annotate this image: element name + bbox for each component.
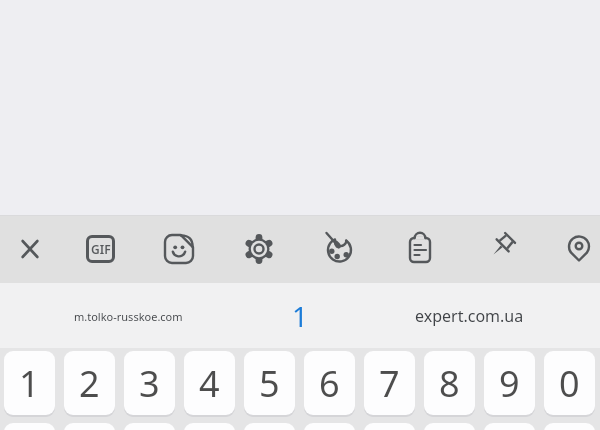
button[interactable]	[398, 227, 442, 271]
button[interactable]	[544, 423, 595, 430]
staticText: 1	[19, 359, 40, 408]
staticText: 3	[139, 359, 160, 408]
button[interactable]: 6	[304, 351, 355, 415]
button[interactable]	[364, 423, 415, 430]
button[interactable]: 0	[544, 351, 595, 415]
button[interactable]: expert.com.ua	[389, 292, 549, 340]
button[interactable]: 7	[364, 351, 415, 415]
button[interactable]	[244, 423, 295, 430]
button[interactable]	[304, 423, 355, 430]
button[interactable]	[64, 423, 115, 430]
button[interactable]: 1	[4, 351, 55, 415]
staticText: 6	[319, 359, 340, 408]
staticText: m.tolko-russkoe.com	[74, 309, 183, 324]
button[interactable]	[4, 423, 55, 430]
button[interactable]: GIF	[78, 227, 122, 271]
staticText: 1	[292, 297, 309, 335]
staticText: 2	[79, 359, 100, 408]
button[interactable]	[484, 423, 535, 430]
button[interactable]	[157, 227, 201, 271]
button[interactable]: 4	[184, 351, 235, 415]
button[interactable]	[480, 227, 524, 271]
button[interactable]	[124, 423, 175, 430]
button[interactable]: 8	[424, 351, 475, 415]
button[interactable]: 3	[124, 351, 175, 415]
button[interactable]	[8, 227, 52, 271]
button[interactable]	[424, 423, 475, 430]
button[interactable]: 9	[484, 351, 535, 415]
staticText: 4	[199, 359, 220, 408]
staticText: 5	[259, 359, 280, 408]
button[interactable]	[318, 227, 362, 271]
button[interactable]	[184, 423, 235, 430]
staticText: 7	[379, 359, 400, 408]
button[interactable]: 2	[64, 351, 115, 415]
staticText: 0	[559, 359, 580, 408]
staticText: 9	[499, 359, 520, 408]
staticText: expert.com.ua	[415, 305, 524, 327]
staticText: 8	[439, 359, 460, 408]
staticText: GIF	[91, 241, 111, 257]
button[interactable]	[237, 227, 281, 271]
button[interactable]	[557, 227, 600, 271]
button[interactable]: 5	[244, 351, 295, 415]
button[interactable]: 1	[260, 292, 340, 340]
button[interactable]: m.tolko-russkoe.com	[48, 296, 208, 336]
